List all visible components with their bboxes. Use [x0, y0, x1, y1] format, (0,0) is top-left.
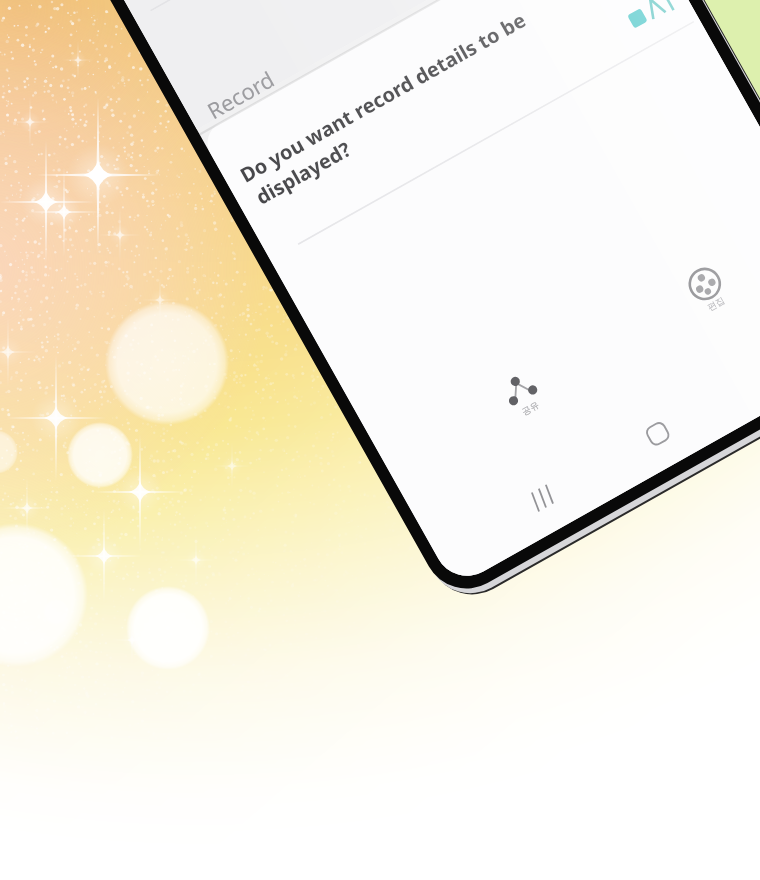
- button[interactable]: Share: [478, 352, 570, 444]
- button[interactable]: Home: [628, 404, 690, 466]
- button[interactable]: Edit: [664, 246, 754, 336]
- button[interactable]: App: [610, 0, 694, 46]
- button[interactable]: Recent apps: [512, 466, 574, 528]
- button[interactable]: Record: [176, 60, 296, 118]
